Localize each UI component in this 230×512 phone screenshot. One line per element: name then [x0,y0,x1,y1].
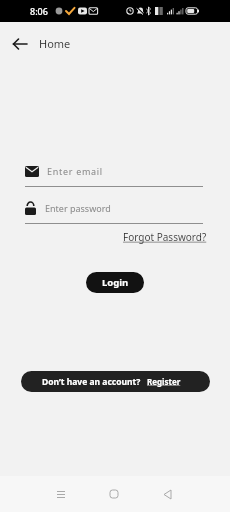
staticText: Enter password [45,202,111,214]
button[interactable] [151,478,183,510]
button[interactable]: Login [86,272,144,293]
staticText: 8:06 [30,5,48,17]
staticText: Enter email [47,165,103,177]
staticText: Don’t have an account? [42,376,141,388]
staticText: Register [147,376,181,387]
button[interactable]: Don’t have an account? [21,371,210,392]
staticText: Login [102,276,129,289]
button[interactable]: Forgot Password? [123,230,207,244]
staticText: Home [39,36,71,51]
button[interactable] [45,478,77,510]
button[interactable] [0,22,40,65]
button[interactable] [98,478,130,510]
